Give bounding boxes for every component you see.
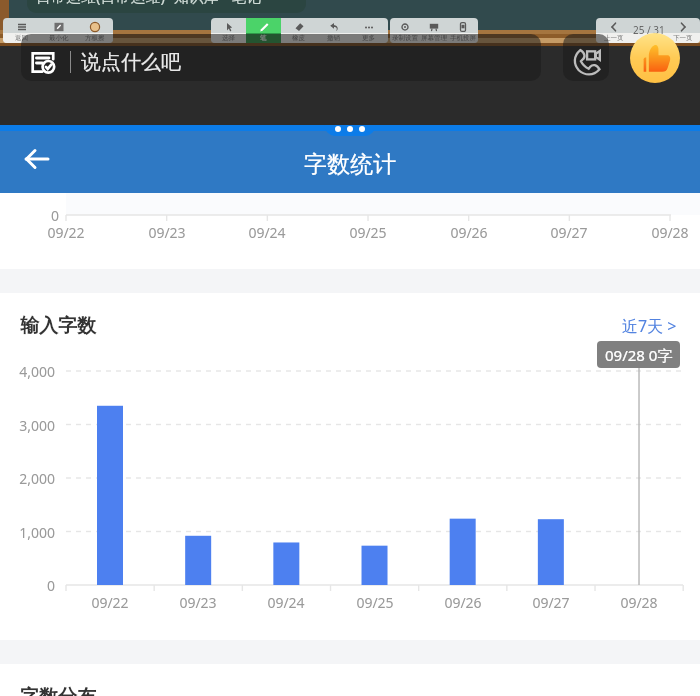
- staticText: 09/22: [30, 223, 102, 242]
- staticText: 屏幕管理: [421, 34, 447, 42]
- staticText: 方板擦: [85, 34, 105, 42]
- staticText: 09/28: [634, 223, 700, 242]
- staticText: 09/28: [603, 593, 675, 612]
- button[interactable]: 下一页: [666, 18, 700, 43]
- button[interactable]: 撤销: [316, 18, 351, 43]
- button[interactable]: 说点什么吧: [21, 31, 541, 93]
- staticText: 更多: [362, 34, 375, 42]
- staticText: 09/25: [332, 223, 404, 242]
- button[interactable]: 近7天 >: [622, 315, 677, 337]
- staticText: 输入字数: [20, 314, 96, 338]
- staticText: 4,000: [0, 362, 55, 381]
- button[interactable]: 方板擦: [77, 18, 113, 43]
- staticText: 09/23: [162, 593, 234, 612]
- staticText: 09/27: [533, 223, 605, 242]
- button[interactable]: 返回: [3, 18, 40, 43]
- staticText: 1,000: [0, 523, 55, 542]
- staticText: 字数统计: [304, 150, 396, 179]
- staticText: 近7天 >: [622, 315, 677, 337]
- staticText: 2,000: [0, 469, 55, 488]
- button[interactable]: 录制设置: [390, 18, 419, 43]
- staticText: 09/26: [427, 593, 499, 612]
- staticText: 下一页: [673, 34, 693, 42]
- staticText: 手机投屏: [450, 34, 476, 42]
- staticText: 09/22: [74, 593, 146, 612]
- button[interactable]: 选择: [211, 18, 246, 43]
- button[interactable]: 最小化: [40, 18, 77, 43]
- button[interactable]: More: [324, 112, 376, 136]
- staticText: 09/28 0字: [605, 345, 673, 365]
- staticText: 撤销: [327, 34, 340, 42]
- button[interactable]: 笔: [246, 18, 281, 43]
- staticText: 09/24: [250, 593, 322, 612]
- button[interactable]: 屏幕管理: [419, 18, 448, 43]
- button[interactable]: 手机投屏: [448, 18, 477, 43]
- staticText: 上一页: [604, 34, 624, 42]
- staticText: 选择: [222, 34, 235, 42]
- staticText: 字数分布: [20, 685, 96, 696]
- staticText: 09/26: [433, 223, 505, 242]
- staticText: 25 / 31: [633, 23, 665, 37]
- button[interactable]: Thumbs up: [630, 33, 680, 83]
- staticText: 返回: [15, 34, 28, 42]
- staticText: 09/25: [339, 593, 411, 612]
- staticText: 笔: [260, 34, 267, 42]
- button[interactable]: 上一页: [596, 18, 631, 43]
- staticText: 橡皮: [292, 34, 305, 42]
- staticText: 09/23: [131, 223, 203, 242]
- staticText: 说点什么吧: [81, 50, 181, 75]
- staticText: 0: [0, 206, 59, 225]
- staticText: 3,000: [0, 416, 55, 435]
- staticText: 录制设置: [392, 34, 418, 42]
- staticText: 0: [0, 576, 55, 595]
- button[interactable]: 橡皮: [281, 18, 316, 43]
- staticText: 最小化: [49, 34, 69, 42]
- staticText: 09/24: [231, 223, 303, 242]
- button[interactable]: Video call: [563, 31, 609, 93]
- button[interactable]: 25 / 31: [631, 18, 666, 43]
- staticText: 日常运维(日常运维)- 知识库 - 笔记: [36, 0, 262, 6]
- button[interactable]: 更多: [351, 18, 386, 43]
- button[interactable]: Back: [13, 135, 61, 183]
- staticText: 09/27: [515, 593, 587, 612]
